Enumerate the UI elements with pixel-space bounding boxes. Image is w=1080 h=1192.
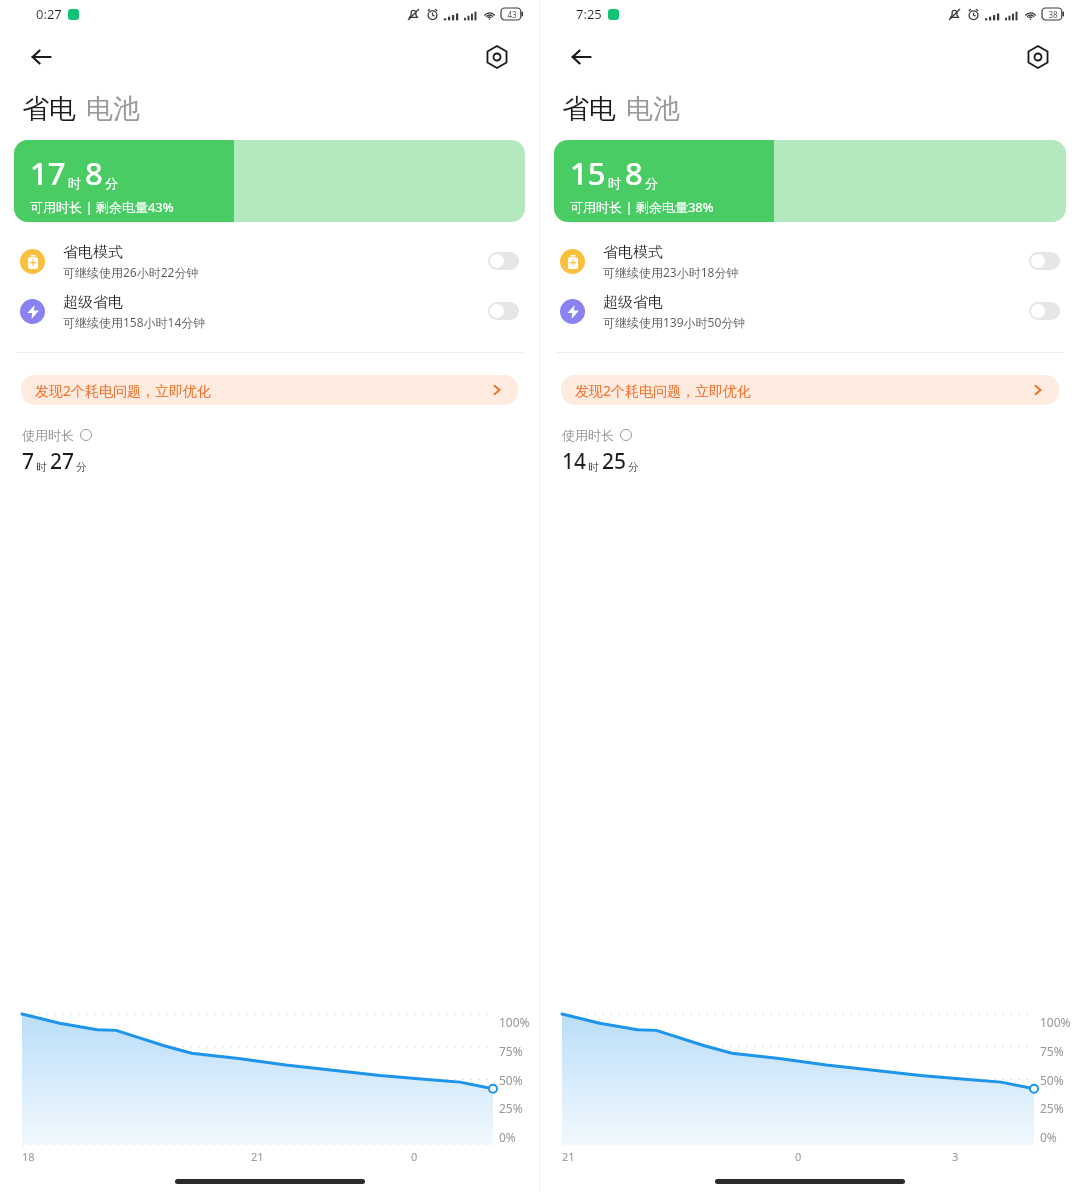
button[interactable]: 超级省电 — [540, 286, 1080, 336]
staticText: 分 — [645, 175, 658, 191]
staticText: 可继续使用23小时18分钟 — [603, 264, 739, 280]
staticText: 使用时长 — [562, 427, 614, 443]
button[interactable]: 17 — [14, 140, 525, 222]
staticText: 分 — [628, 460, 639, 474]
staticText: 可用时长 | 剩余电量43% — [30, 198, 174, 216]
staticText: 50% — [499, 1072, 523, 1088]
staticText: 可继续使用158小时14分钟 — [63, 314, 206, 330]
staticText: 时 — [36, 460, 47, 474]
staticText: 超级省电 — [63, 293, 123, 312]
staticText: 3 — [952, 1149, 959, 1164]
button[interactable]: Toggle 省电模式 — [1029, 252, 1060, 270]
staticText: 21 — [251, 1149, 264, 1164]
staticText: 100% — [499, 1014, 530, 1030]
button[interactable]: 发现2个耗电问题，立即优化 — [21, 375, 518, 405]
staticText: 可继续使用139小时50分钟 — [603, 314, 746, 330]
staticText: 0% — [1040, 1129, 1057, 1145]
button[interactable]: Settings — [1016, 35, 1060, 79]
staticText: 电池 — [626, 92, 680, 126]
staticText: 分 — [105, 175, 118, 191]
button[interactable]: 省电模式 — [540, 236, 1080, 286]
staticText: 43 — [507, 9, 517, 20]
staticText: 8 — [85, 152, 103, 194]
staticText: 25% — [1040, 1100, 1064, 1116]
button[interactable]: Toggle 超级省电 — [488, 302, 519, 320]
button[interactable]: 省电模式 — [0, 236, 539, 286]
button[interactable]: Back — [560, 35, 604, 79]
staticText: 分 — [76, 460, 87, 474]
staticText: 省电 — [562, 92, 616, 126]
staticText: 18 — [22, 1149, 35, 1164]
button[interactable]: Back — [20, 35, 64, 79]
staticText: 8 — [625, 152, 643, 194]
staticText: 时 — [608, 175, 621, 191]
staticText: 27 — [50, 447, 75, 476]
staticText: 发现2个耗电问题，立即优化 — [575, 381, 752, 400]
staticText: 超级省电 — [603, 293, 663, 312]
staticText: 14 — [562, 447, 587, 476]
staticText: 省电模式 — [63, 243, 123, 262]
staticText: 25% — [499, 1100, 523, 1116]
staticText: 25 — [602, 447, 627, 476]
button[interactable]: 15 — [554, 140, 1066, 222]
staticText: 50% — [1040, 1072, 1064, 1088]
staticText: 0 — [795, 1149, 802, 1164]
staticText: 0% — [499, 1129, 516, 1145]
staticText: 电池 — [86, 92, 140, 126]
staticText: 0:27 — [36, 5, 62, 23]
staticText: 75% — [1040, 1043, 1064, 1059]
staticText: 15 — [570, 152, 606, 194]
staticText: 21 — [562, 1149, 575, 1164]
button[interactable]: Settings — [475, 35, 519, 79]
staticText: 时 — [588, 460, 599, 474]
staticText: 17 — [30, 152, 66, 194]
staticText: 0 — [411, 1149, 418, 1164]
staticText: 可用时长 | 剩余电量38% — [570, 198, 714, 216]
staticText: 时 — [68, 175, 81, 191]
button[interactable]: Toggle 省电模式 — [488, 252, 519, 270]
staticText: 发现2个耗电问题，立即优化 — [35, 381, 212, 400]
staticText: 100% — [1040, 1014, 1071, 1030]
staticText: 省电 — [22, 92, 76, 126]
staticText: 使用时长 — [22, 427, 74, 443]
button[interactable]: Toggle 超级省电 — [1029, 302, 1060, 320]
button[interactable]: 发现2个耗电问题，立即优化 — [561, 375, 1059, 405]
staticText: 省电模式 — [603, 243, 663, 262]
staticText: 38 — [1048, 9, 1058, 20]
staticText: 可继续使用26小时22分钟 — [63, 264, 199, 280]
button[interactable]: 超级省电 — [0, 286, 539, 336]
staticText: 7 — [22, 447, 35, 476]
staticText: 75% — [499, 1043, 523, 1059]
staticText: 7:25 — [576, 5, 602, 23]
